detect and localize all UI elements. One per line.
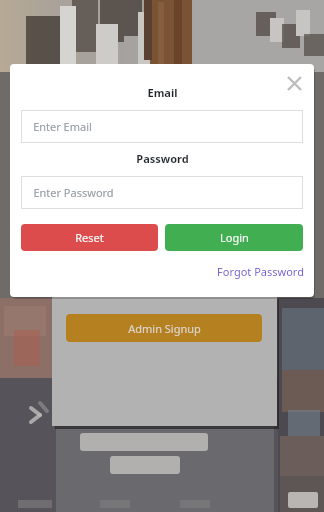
button[interactable]: Forgot Password xyxy=(215,262,306,281)
staticText: Admin Signup xyxy=(128,321,201,336)
button[interactable]: Login xyxy=(165,224,303,251)
button[interactable]: Enter Password xyxy=(21,176,303,209)
button[interactable]: Close xyxy=(280,69,308,97)
button[interactable]: Enter Email xyxy=(21,110,303,143)
staticText: Reset xyxy=(75,230,104,245)
staticText: Enter Password xyxy=(33,185,114,200)
staticText: Password xyxy=(136,151,189,166)
staticText: Login xyxy=(220,230,249,245)
button[interactable]: Admin Signup xyxy=(66,314,262,342)
button[interactable]: Reset xyxy=(21,224,158,251)
staticText: Enter Email xyxy=(33,119,92,134)
staticText: Email xyxy=(147,85,178,100)
staticText: Forgot Password xyxy=(217,264,304,279)
